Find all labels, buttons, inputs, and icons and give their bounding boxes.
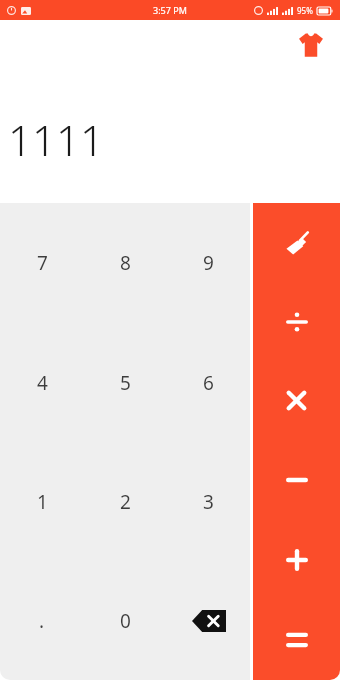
button[interactable]: 6 — [167, 323, 250, 442]
button[interactable]: Subtract — [253, 440, 340, 520]
button[interactable]: Backspace — [167, 561, 250, 680]
button[interactable]: 8 — [84, 203, 167, 323]
staticText: 0 — [120, 608, 131, 634]
button[interactable]: Equals — [253, 600, 340, 680]
button[interactable]: 2 — [84, 442, 167, 561]
staticText: 9 — [203, 250, 214, 276]
staticText: . — [39, 608, 45, 634]
button[interactable]: 7 — [0, 203, 84, 323]
staticText: 1 — [37, 489, 48, 515]
button[interactable]: Divide — [253, 282, 340, 361]
staticText: 8 — [120, 250, 131, 276]
staticText: 6 — [203, 370, 214, 396]
staticText: 95% — [297, 5, 313, 16]
button[interactable]: Clear — [253, 203, 340, 282]
staticText: 7 — [37, 250, 48, 276]
staticText: 2 — [120, 489, 131, 515]
button[interactable]: Add — [253, 520, 340, 600]
button[interactable]: 0 — [84, 561, 167, 680]
button[interactable]: 1 — [0, 442, 84, 561]
staticText: 5 — [120, 370, 131, 396]
staticText: 4 — [37, 370, 48, 396]
staticText: 1111 — [8, 111, 104, 168]
button[interactable]: Theme — [294, 28, 328, 62]
button[interactable]: 9 — [167, 203, 250, 323]
button[interactable]: 4 — [0, 323, 84, 442]
button[interactable]: 3 — [167, 442, 250, 561]
button[interactable]: . — [0, 561, 84, 680]
button[interactable]: Multiply — [253, 361, 340, 440]
staticText: 3:57 PM — [153, 4, 187, 16]
button[interactable]: 5 — [84, 323, 167, 442]
staticText: 3 — [203, 489, 214, 515]
